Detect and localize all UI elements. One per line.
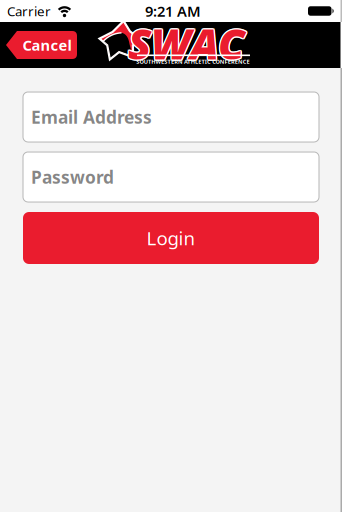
button[interactable]: Login bbox=[23, 212, 319, 264]
staticText: SWAC bbox=[127, 14, 244, 70]
staticText: SWAC bbox=[127, 16, 244, 72]
staticText: SOUTHWESTERN ATHLETIC CONFERENCE bbox=[72, 53, 314, 69]
staticText: Cancel bbox=[22, 35, 71, 55]
staticText: SWAC bbox=[129, 15, 246, 71]
staticText: SWAC bbox=[129, 16, 246, 72]
staticText: SWAC bbox=[128, 13, 245, 70]
staticText: Password bbox=[31, 165, 114, 188]
staticText: 9:21 AM bbox=[145, 1, 201, 21]
staticText: Carrier bbox=[7, 2, 51, 20]
button[interactable]: Email Address bbox=[23, 92, 319, 142]
staticText: SWAC bbox=[128, 16, 245, 73]
staticText: SWAC bbox=[128, 15, 245, 71]
staticText: SWAC bbox=[129, 14, 246, 70]
button[interactable]: Cancel bbox=[6, 30, 77, 59]
button[interactable]: Password bbox=[23, 152, 319, 202]
staticText: SWAC bbox=[127, 15, 244, 71]
staticText: Email Address bbox=[31, 105, 152, 128]
staticText: Login bbox=[146, 226, 195, 250]
